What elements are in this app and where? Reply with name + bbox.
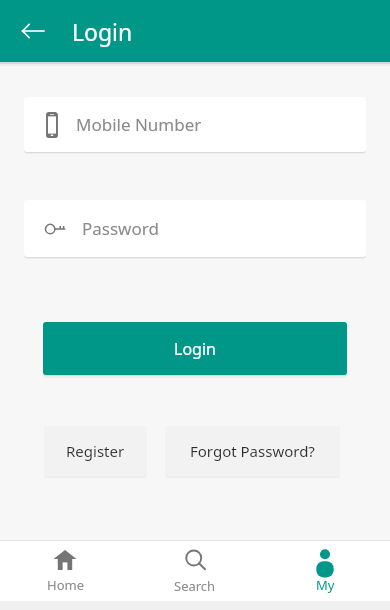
staticText: Search: [174, 577, 216, 595]
button[interactable]: Home: [0, 541, 130, 601]
staticText: Password: [82, 217, 159, 240]
staticText: Register: [66, 441, 125, 461]
staticText: Home: [47, 576, 84, 594]
button[interactable]: My: [260, 541, 390, 601]
button[interactable]: Back: [10, 8, 56, 54]
button[interactable]: Search: [130, 541, 260, 601]
staticText: My: [316, 576, 335, 594]
staticText: Login: [72, 16, 133, 47]
staticText: Login: [174, 338, 216, 360]
button[interactable]: Register: [44, 426, 147, 476]
button[interactable]: Mobile Number: [24, 97, 366, 152]
button[interactable]: Login: [43, 322, 347, 375]
button[interactable]: Password: [24, 200, 366, 257]
button[interactable]: Forgot Password?: [165, 426, 340, 476]
staticText: Forgot Password?: [190, 441, 315, 461]
staticText: Mobile Number: [76, 113, 202, 136]
